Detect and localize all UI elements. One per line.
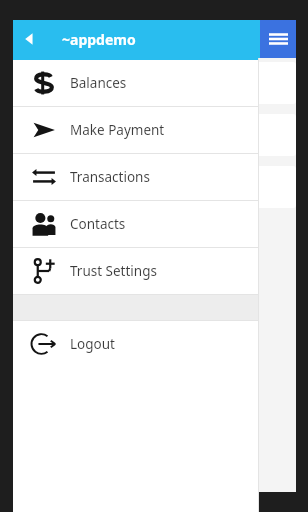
- staticText: BTC: [143, 126, 170, 145]
- button[interactable]: XRP: [17, 62, 296, 104]
- button[interactable]: Trust Settings: [13, 248, 258, 294]
- staticText: Contacts: [70, 215, 126, 233]
- staticText: Logout: [70, 335, 115, 353]
- button[interactable]: Logout: [13, 321, 258, 367]
- button[interactable]: Back: [13, 22, 47, 56]
- button[interactable]: USD: [17, 166, 296, 208]
- staticText: Make Payment: [70, 121, 165, 139]
- button[interactable]: Contacts: [13, 201, 258, 247]
- button[interactable]: BTC: [17, 114, 296, 156]
- button[interactable]: Transactions: [13, 154, 258, 200]
- button[interactable]: Balances: [13, 60, 258, 106]
- staticText: Trust Settings: [70, 262, 157, 280]
- button[interactable]: Make Payment: [13, 107, 258, 153]
- staticText: ~appdemo: [62, 30, 136, 49]
- staticText: USD: [142, 178, 171, 197]
- staticText: Balances: [70, 74, 127, 92]
- staticText: Transactions: [70, 168, 150, 186]
- button[interactable]: Menu: [260, 20, 296, 58]
